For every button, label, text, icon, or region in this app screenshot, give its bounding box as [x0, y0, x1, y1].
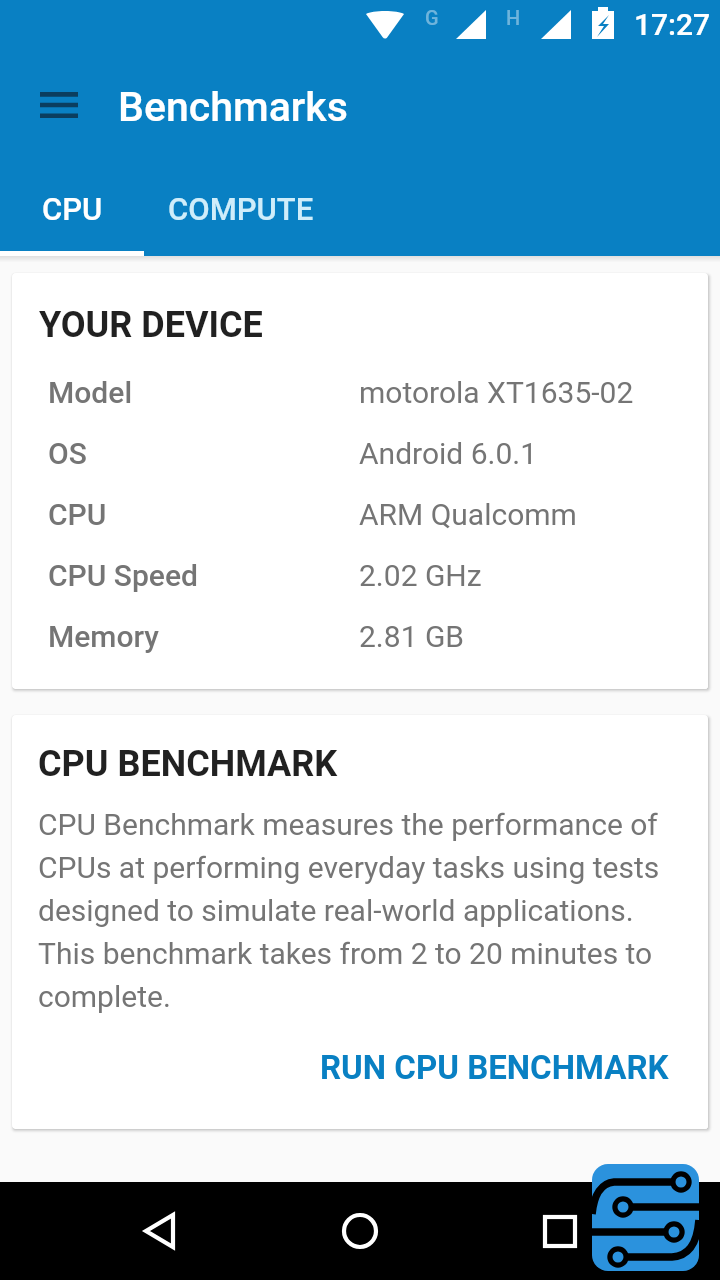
staticText: CPU Benchmark measures the performance o…: [38, 807, 682, 1014]
staticText: CPU BENCHMARK: [38, 743, 338, 785]
staticText: RUN CPU BENCHMARK: [320, 1048, 669, 1087]
staticText: Android 6.0.1: [359, 436, 538, 471]
staticText: 2.02 GHz: [359, 558, 482, 593]
staticText: CPU Speed: [48, 558, 359, 593]
staticText: H: [506, 6, 521, 29]
staticText: COMPUTE: [168, 191, 314, 227]
staticText: 17:27: [634, 7, 711, 42]
staticText: Benchmarks: [118, 83, 348, 131]
button[interactable]: Geekbench app icon: [592, 1164, 699, 1271]
staticText: Memory: [48, 619, 359, 654]
button[interactable]: CPU: [0, 161, 144, 256]
staticText: OS: [48, 436, 359, 471]
staticText: motorola XT1635-02: [359, 375, 634, 410]
staticText: CPU: [48, 497, 359, 532]
button[interactable]: RUN CPU BENCHMARK: [304, 1036, 682, 1099]
button[interactable]: COMPUTE: [144, 161, 337, 256]
staticText: Model: [48, 375, 359, 410]
staticText: G: [425, 6, 439, 29]
staticText: YOUR DEVICE: [39, 304, 263, 346]
staticText: CPU: [42, 191, 103, 227]
staticText: 2.81 GB: [359, 619, 465, 654]
staticText: ARM Qualcomm: [359, 497, 577, 532]
button[interactable]: Open navigation drawer: [0, 58, 118, 152]
